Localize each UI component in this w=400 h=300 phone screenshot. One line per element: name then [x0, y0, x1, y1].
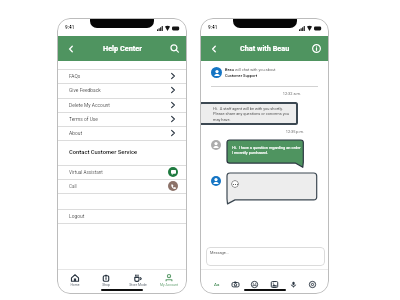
button[interactable]: Virtual Assistant	[57, 165, 187, 179]
staticText: Give Feedback	[69, 87, 101, 93]
button[interactable]: My Account	[155, 270, 183, 287]
staticText: Hi. I have a question regarding an order…	[232, 145, 301, 155]
button[interactable]: Camera	[231, 280, 240, 289]
staticText: About	[69, 130, 83, 136]
staticText: Store Mode	[129, 283, 147, 287]
staticText: Beau	[225, 67, 234, 72]
button[interactable]: Voice message	[289, 280, 298, 289]
button[interactable]: Home	[61, 270, 89, 287]
staticText: Aa	[214, 282, 220, 287]
staticText: Home	[70, 283, 80, 287]
staticText: Call	[69, 184, 77, 189]
button[interactable]: Store Mode	[124, 270, 152, 287]
button[interactable]: Emoji	[250, 280, 259, 289]
staticText: Terms of Use	[69, 116, 98, 122]
button[interactable]: Message...	[206, 247, 325, 266]
staticText: will chat with you about	[234, 67, 276, 72]
staticText: FAQs	[69, 73, 81, 79]
staticText: 9:41	[65, 25, 75, 31]
staticText: Chat with Beau	[240, 44, 290, 53]
staticText: Customer Support	[225, 73, 258, 78]
button[interactable]: Call	[57, 179, 187, 193]
staticText: My Account	[160, 283, 178, 287]
staticText: Contact Customer Service	[69, 149, 138, 156]
button[interactable]: FAQs	[57, 69, 187, 83]
button[interactable]: Back	[65, 43, 76, 54]
button[interactable]: Terms of Use	[57, 112, 187, 126]
button[interactable]: About	[57, 126, 187, 140]
button[interactable]: Search	[169, 43, 180, 54]
button[interactable]: Text format	[212, 280, 221, 289]
button[interactable]: Photos	[270, 280, 279, 289]
button[interactable]: Hi. A staff agent will be with you short…	[200, 102, 298, 125]
button[interactable]: More options	[308, 280, 317, 289]
staticText: 9:41	[208, 25, 218, 31]
staticText: Logout	[69, 213, 85, 219]
staticText: Message...	[210, 250, 229, 255]
button[interactable]: Logout	[57, 209, 187, 223]
button[interactable]: Delete My Account	[57, 98, 187, 112]
staticText: 12:35 p.m.	[200, 129, 304, 134]
button[interactable]: Back	[208, 43, 219, 54]
staticText: Help Center	[103, 44, 142, 53]
staticText: Hi. A staff agent will be with you short…	[213, 106, 295, 122]
button[interactable]: Give Feedback	[57, 83, 187, 97]
staticText: Shop	[102, 283, 110, 287]
staticText: 12:32 a.m.	[200, 91, 301, 96]
staticText: Delete My Account	[69, 102, 110, 108]
button[interactable]: Info	[311, 43, 322, 54]
staticText: Virtual Assistant	[69, 170, 103, 175]
button[interactable]: Shop	[92, 270, 120, 287]
